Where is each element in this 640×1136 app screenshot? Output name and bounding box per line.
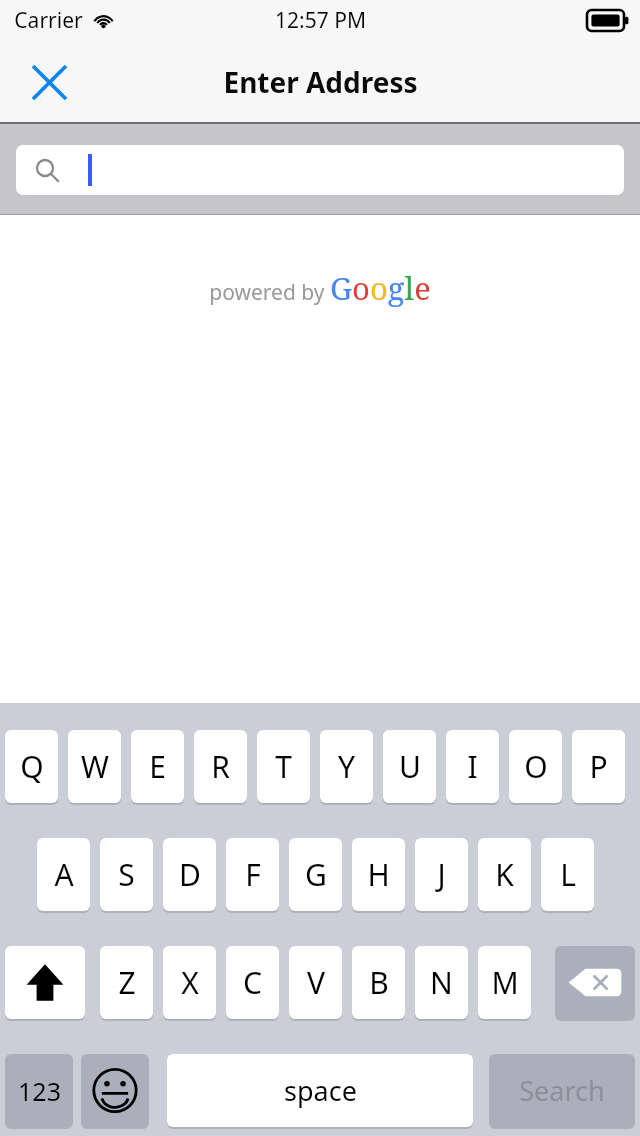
staticText: C	[243, 962, 262, 1003]
button[interactable]: U	[383, 730, 436, 805]
staticText: N	[430, 962, 453, 1003]
button[interactable]: Y	[320, 730, 373, 805]
button[interactable]: X	[163, 946, 216, 1021]
button[interactable]: B	[352, 946, 405, 1021]
button[interactable]: R	[194, 730, 247, 805]
button[interactable]: G	[289, 838, 342, 913]
button[interactable]: C	[226, 946, 279, 1021]
button[interactable]: P	[572, 730, 625, 805]
staticText: L	[560, 854, 576, 895]
button[interactable]: Search	[489, 1054, 635, 1129]
staticText: F	[245, 854, 261, 895]
staticText: H	[367, 854, 390, 895]
staticText: U	[399, 746, 421, 787]
button[interactable]: D	[163, 838, 216, 913]
button[interactable]: Emoji	[81, 1054, 149, 1129]
button[interactable]: Shift	[5, 946, 85, 1021]
staticText: P	[589, 746, 608, 787]
staticText: A	[54, 854, 74, 895]
button[interactable]: H	[352, 838, 405, 913]
button[interactable]: W	[68, 730, 121, 805]
staticText: W	[81, 746, 109, 787]
button[interactable]: M	[478, 946, 531, 1021]
staticText: space	[284, 1072, 357, 1109]
staticText: G	[305, 854, 327, 895]
button[interactable]: K	[478, 838, 531, 913]
staticText: E	[149, 746, 166, 787]
staticText: Y	[338, 746, 355, 787]
staticText: Q	[20, 746, 44, 787]
button[interactable]: S	[100, 838, 153, 913]
staticText: S	[118, 854, 135, 895]
button[interactable]: L	[541, 838, 594, 913]
button[interactable]: E	[131, 730, 184, 805]
button[interactable]: T	[257, 730, 310, 805]
staticText: J	[437, 854, 446, 895]
button[interactable]: V	[289, 946, 342, 1021]
staticText: X	[181, 962, 199, 1003]
staticText: V	[307, 962, 325, 1003]
staticText: Z	[118, 962, 136, 1003]
button[interactable]	[16, 145, 624, 195]
staticText: 12:57 PM	[275, 6, 366, 35]
staticText: O	[524, 746, 548, 787]
button[interactable]: O	[509, 730, 562, 805]
staticText: Search	[519, 1072, 605, 1109]
button[interactable]: F	[226, 838, 279, 913]
button[interactable]: 123	[5, 1054, 73, 1129]
staticText: powered by Google	[209, 267, 431, 309]
staticText: Carrier	[14, 6, 83, 35]
staticText: T	[275, 746, 292, 787]
staticText: B	[369, 962, 389, 1003]
staticText: D	[179, 854, 201, 895]
button[interactable]: I	[446, 730, 499, 805]
button[interactable]: Close	[21, 54, 77, 110]
button[interactable]: A	[37, 838, 90, 913]
button[interactable]: space	[167, 1054, 473, 1129]
staticText: Enter Address	[223, 63, 418, 101]
button[interactable]: N	[415, 946, 468, 1021]
button[interactable]: Q	[5, 730, 58, 805]
staticText: R	[211, 746, 230, 787]
staticText: 123	[18, 1074, 61, 1108]
staticText: I	[467, 746, 478, 787]
button[interactable]: Backspace	[555, 946, 635, 1021]
staticText: M	[491, 962, 519, 1003]
staticText: K	[495, 854, 514, 895]
button[interactable]: Z	[100, 946, 153, 1021]
button[interactable]: J	[415, 838, 468, 913]
